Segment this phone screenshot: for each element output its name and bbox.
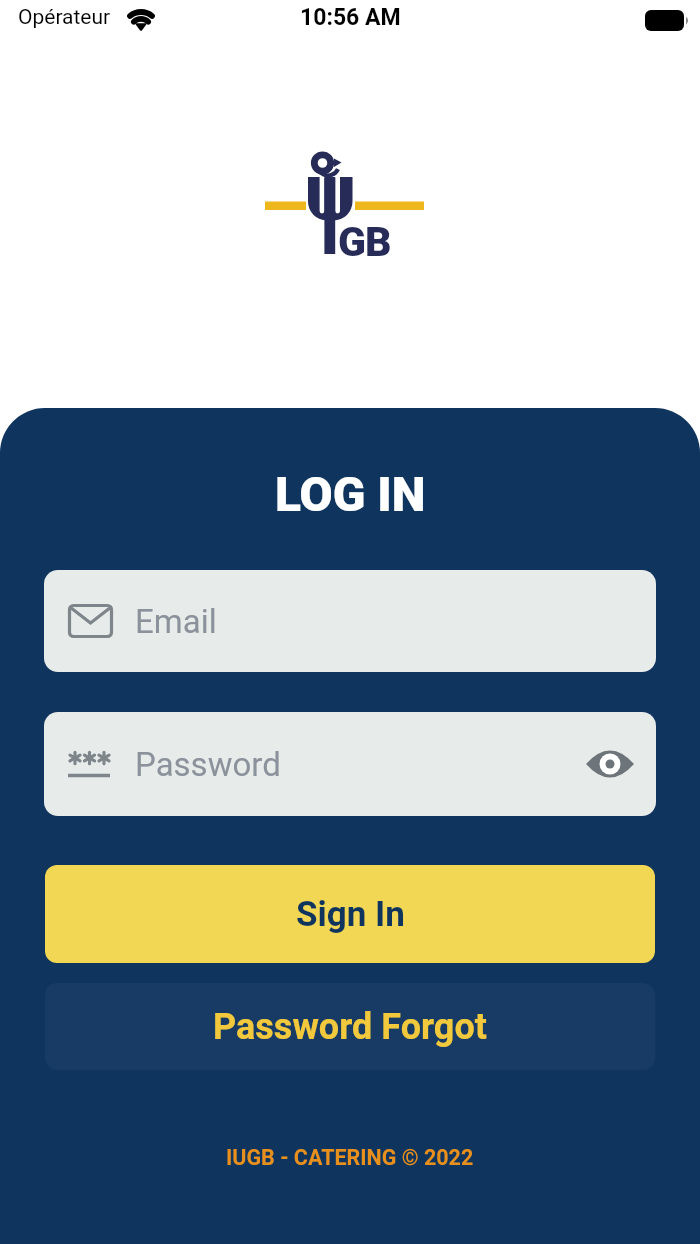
staticText: IUGB - CATERING © 2022: [226, 1145, 474, 1170]
button[interactable]: Password Forgot: [45, 983, 655, 1070]
staticText: 10:56 AM: [300, 4, 401, 31]
button[interactable]: Sign In: [45, 865, 655, 963]
staticText: GB: [338, 218, 391, 266]
staticText: Sign In: [296, 894, 405, 935]
staticText: Password: [135, 745, 281, 784]
staticText: LOG IN: [275, 466, 426, 522]
button[interactable]: Password: [44, 712, 656, 816]
staticText: Email: [135, 602, 217, 641]
button[interactable]: Email: [44, 570, 656, 672]
staticText: Opérateur: [18, 5, 111, 30]
staticText: Password Forgot: [213, 1006, 487, 1048]
button[interactable]: [586, 748, 634, 780]
